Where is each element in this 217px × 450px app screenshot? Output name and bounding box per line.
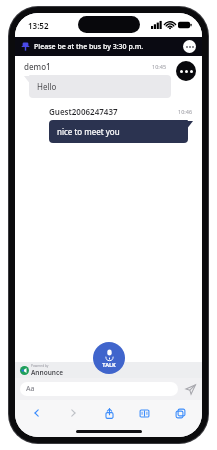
staticText: Please be at the bus by 3:30 p.m. xyxy=(34,42,183,52)
staticText: 13:52 xyxy=(28,20,49,31)
staticText: demo1 xyxy=(24,61,51,72)
staticText: 10:46 xyxy=(178,108,193,115)
button[interactable]: Aa xyxy=(20,382,178,396)
staticText: Hello xyxy=(37,81,57,92)
staticText: Announce xyxy=(31,368,64,377)
staticText: Aa xyxy=(26,384,35,394)
staticText: TALK xyxy=(102,361,116,368)
button[interactable]: Bookmarks xyxy=(132,401,156,425)
button[interactable]: Powered by xyxy=(20,364,64,377)
button[interactable]: More banner options xyxy=(183,40,196,53)
button[interactable]: Forward xyxy=(61,401,85,425)
staticText: Guest2006247437 xyxy=(49,106,118,117)
button[interactable]: Talk xyxy=(93,342,125,374)
button[interactable]: Hello xyxy=(29,75,171,98)
button[interactable]: Back xyxy=(25,401,49,425)
staticText: 10:45 xyxy=(152,63,167,70)
button[interactable]: More options xyxy=(176,61,196,81)
button[interactable]: Send message xyxy=(183,382,197,396)
button[interactable]: Share xyxy=(97,401,121,425)
button[interactable]: Please be at the bus by 3:30 p.m. xyxy=(15,37,202,56)
button[interactable]: Tabs xyxy=(168,401,192,425)
staticText: Powered by xyxy=(31,364,49,368)
staticText: nice to meet you xyxy=(57,126,120,137)
button[interactable]: nice to meet you xyxy=(49,120,188,143)
